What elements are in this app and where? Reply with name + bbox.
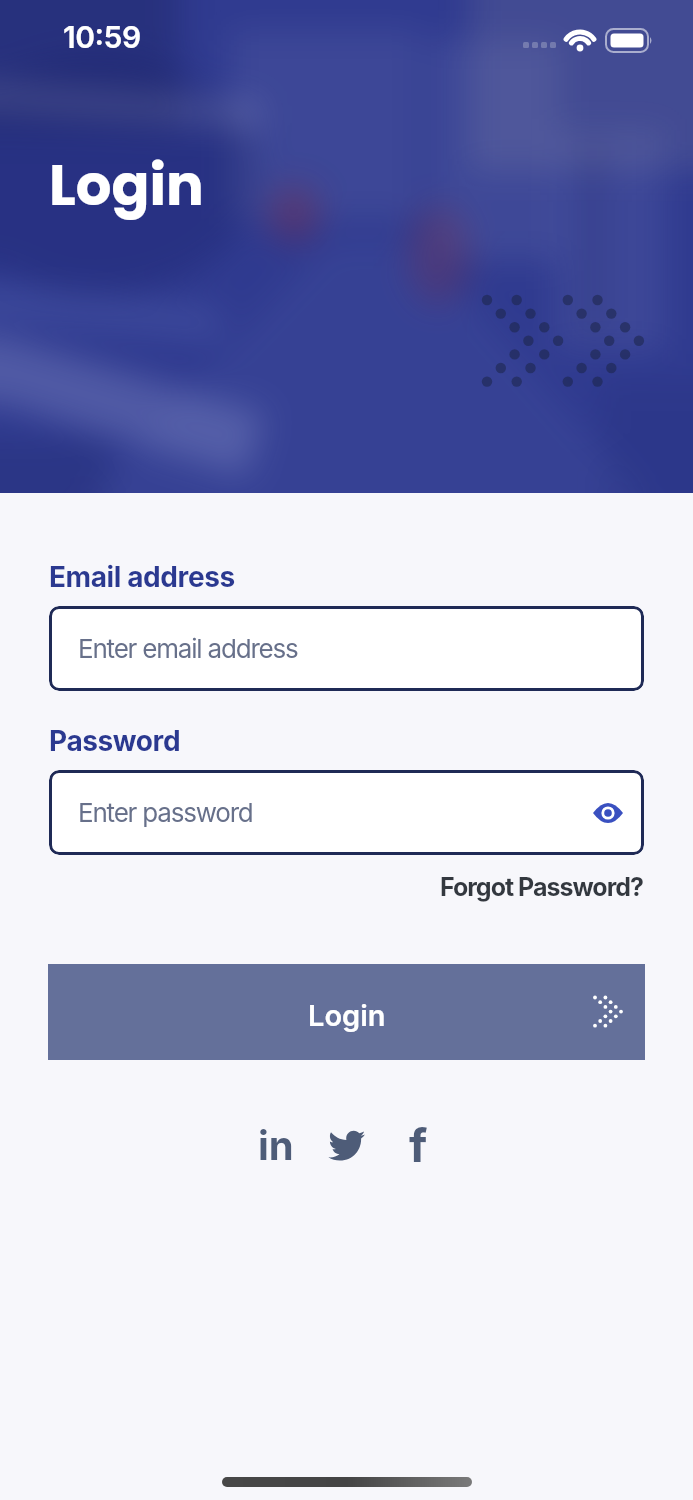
button[interactable]: Enter password	[49, 770, 644, 855]
button[interactable]: in	[258, 1121, 294, 1169]
staticText: Login	[308, 998, 386, 1033]
staticText: Enter email address	[78, 633, 298, 664]
staticText: Enter password	[78, 797, 253, 828]
staticText: Password	[49, 724, 181, 758]
button[interactable]: f	[409, 1117, 428, 1173]
staticText: Login	[49, 146, 204, 224]
button[interactable]: Login	[48, 964, 645, 1060]
button[interactable]: Forgot Password?	[440, 872, 644, 902]
staticText: 10:59	[63, 19, 141, 55]
staticText: Email address	[49, 560, 235, 594]
button[interactable]: Enter email address	[49, 606, 644, 691]
button[interactable]	[319, 1117, 375, 1173]
